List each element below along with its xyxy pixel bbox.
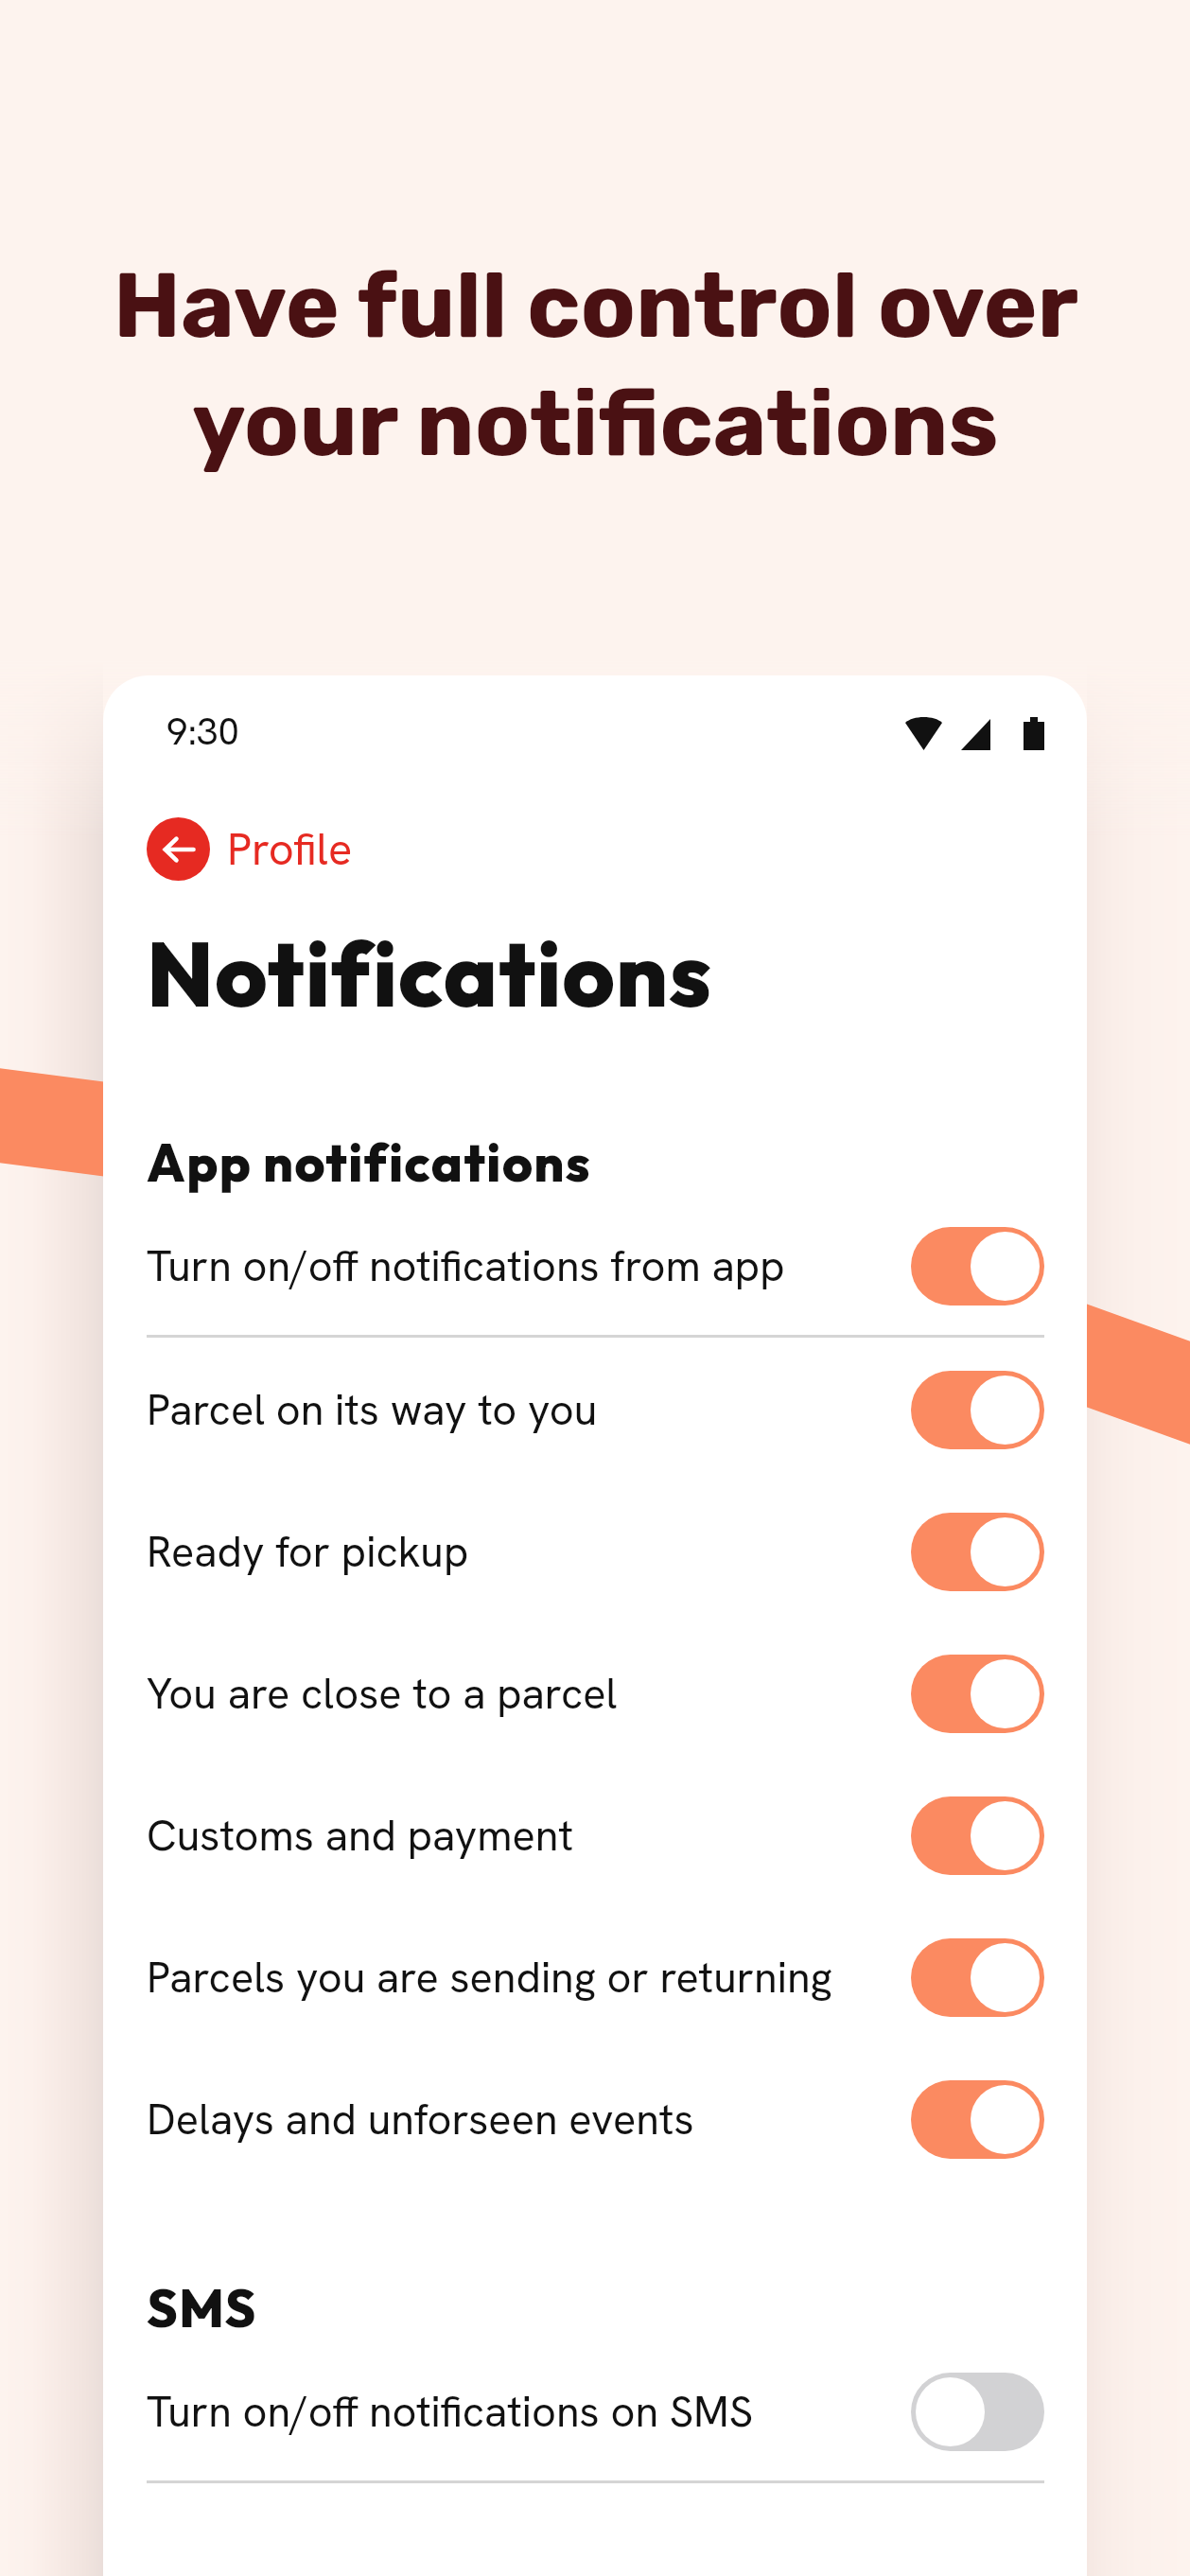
staticText: Parcel on its way to you xyxy=(147,1382,911,1438)
staticText: App notifications xyxy=(147,1130,592,1195)
button[interactable]: On xyxy=(911,2080,1044,2159)
button[interactable]: Off xyxy=(911,2373,1044,2451)
staticText: Parcels you are sending or returning xyxy=(147,1950,911,2006)
button[interactable]: Turn on/off notifications from app xyxy=(103,1195,1087,1337)
staticText: Have full control over your notification… xyxy=(72,252,1118,478)
button[interactable]: On xyxy=(911,1371,1044,1449)
button[interactable]: On xyxy=(911,1655,1044,1733)
button[interactable]: You are close to a parcel xyxy=(103,1622,1087,1764)
button[interactable]: Parcels you are sending or returning xyxy=(103,1906,1087,2048)
button[interactable]: Back to Profile xyxy=(147,817,353,881)
staticText: Delays and unforseen events xyxy=(147,2092,911,2147)
button[interactable]: Parcel on its way to you xyxy=(103,1339,1087,1481)
staticText: Notifications xyxy=(147,917,713,1030)
button[interactable]: On xyxy=(911,1227,1044,1306)
staticText: SMS xyxy=(147,2275,257,2340)
button[interactable]: On xyxy=(911,1796,1044,1875)
button[interactable]: Customs and payment xyxy=(103,1764,1087,1906)
staticText: Turn on/off notifications from app xyxy=(147,1238,911,1294)
staticText: Turn on/off notifications on SMS xyxy=(147,2384,911,2440)
button[interactable]: Delays and unforseen events xyxy=(103,2048,1087,2190)
button[interactable]: Ready for pickup xyxy=(103,1481,1087,1622)
staticText: You are close to a parcel xyxy=(147,1666,911,1722)
button[interactable]: On xyxy=(911,1938,1044,2017)
staticText: 9:30 xyxy=(166,707,239,756)
staticText: Customs and payment xyxy=(147,1808,911,1864)
button[interactable]: Turn on/off notifications on SMS xyxy=(103,2340,1087,2482)
staticText: Ready for pickup xyxy=(147,1524,911,1580)
staticText: Profile xyxy=(227,820,353,878)
button[interactable]: On xyxy=(911,1513,1044,1591)
other: Back to Profile xyxy=(147,817,210,881)
